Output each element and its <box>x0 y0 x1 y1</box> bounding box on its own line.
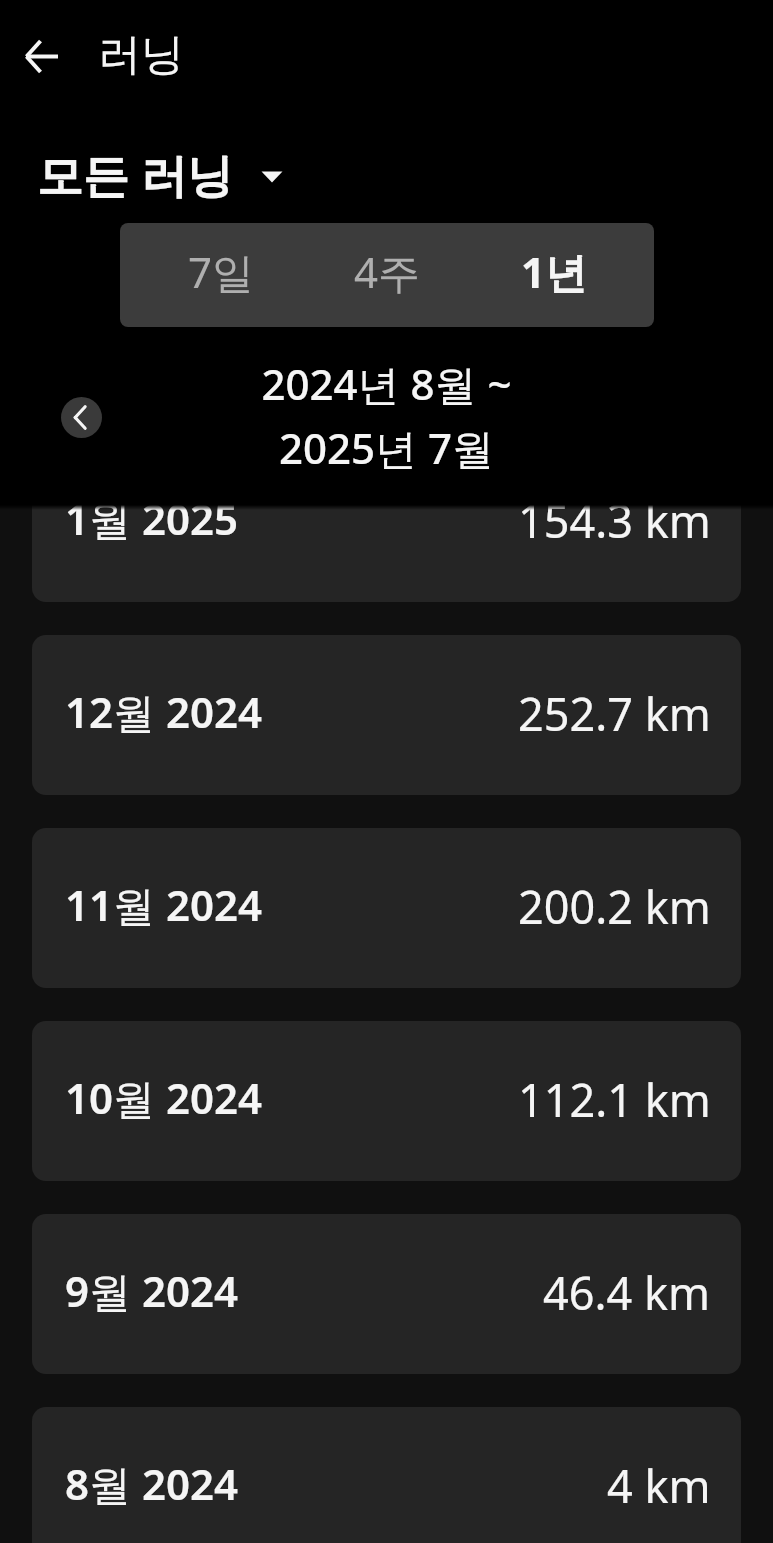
button[interactable]: 7일 <box>137 223 303 327</box>
button[interactable]: 1년 <box>470 223 637 327</box>
staticText: 1년 <box>521 243 588 300</box>
button[interactable]: 1월 2025 <box>32 442 741 602</box>
button[interactable]: 모든 러닝 <box>37 143 309 206</box>
button[interactable]: 11월 2024 <box>32 828 741 988</box>
staticText: 10월 2024 <box>65 1069 263 1126</box>
staticText: 1월 2025 <box>65 490 239 547</box>
button[interactable]: 9월 2024 <box>32 1214 741 1374</box>
staticText: 7일 <box>188 243 255 300</box>
staticText: 러닝 <box>98 28 184 82</box>
staticText: 8월 2024 <box>65 1455 239 1512</box>
staticText: 모든 러닝 <box>37 143 233 206</box>
button[interactable]: 12월 2024 <box>32 635 741 795</box>
button[interactable]: 8월 2024 <box>32 1407 741 1543</box>
button[interactable]: 10월 2024 <box>32 1021 741 1181</box>
staticText: 46.4 km <box>543 1262 711 1323</box>
staticText: 112.1 km <box>518 1069 711 1130</box>
staticText: 200.2 km <box>518 876 711 937</box>
button[interactable]: 4주 <box>303 223 470 327</box>
button[interactable]: Back <box>14 29 68 83</box>
button[interactable]: Previous period <box>61 397 102 438</box>
staticText: 2024년 8월 ~ <box>0 355 773 412</box>
staticText: 11월 2024 <box>65 876 263 933</box>
staticText: 2025년 7월 <box>0 419 773 476</box>
staticText: 4주 <box>354 243 421 300</box>
staticText: 4 km <box>607 1455 711 1516</box>
staticText: 9월 2024 <box>65 1262 239 1319</box>
staticText: 252.7 km <box>518 683 711 744</box>
staticText: 154.3 km <box>518 490 711 551</box>
staticText: 12월 2024 <box>65 683 263 740</box>
